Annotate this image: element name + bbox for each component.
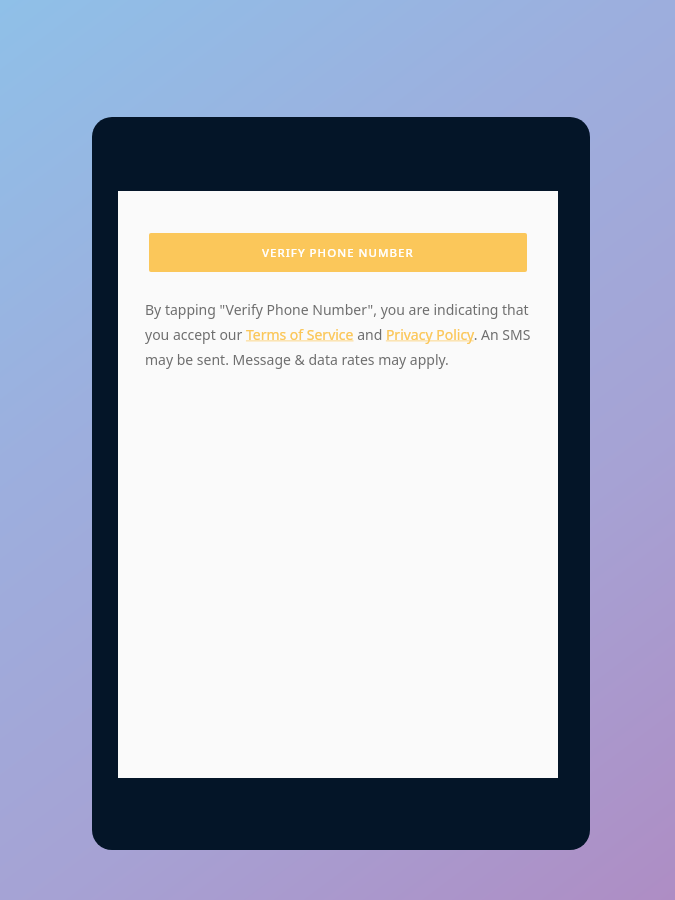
staticText: VERIFY PHONE NUMBER bbox=[262, 245, 414, 261]
staticText: By tapping "Verify Phone Number", you ar… bbox=[145, 300, 531, 369]
button[interactable]: VERIFY PHONE NUMBER bbox=[149, 233, 527, 272]
